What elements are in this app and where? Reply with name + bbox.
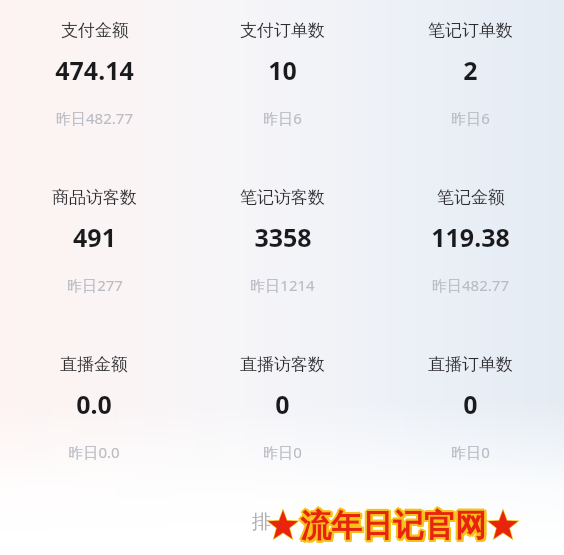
staticText: 笔记订单数 <box>428 20 513 41</box>
staticText: 直播订单数 <box>428 354 513 375</box>
staticText: 119.38 <box>431 220 510 254</box>
staticText: 昨日6 <box>451 108 490 128</box>
staticText: 流年日记官网 <box>302 506 488 545</box>
staticText: 10 <box>268 53 297 87</box>
staticText: 流年日记官网 <box>302 508 488 547</box>
staticText: 昨日482.77 <box>56 108 133 128</box>
staticText: 流年日记官网 <box>299 508 485 547</box>
staticText: 排 <box>252 510 271 534</box>
staticText: 流年日记官网 <box>299 505 485 544</box>
staticText: 昨日482.77 <box>432 275 509 295</box>
staticText: 昨日0.0 <box>68 442 120 462</box>
button[interactable]: 笔记订单数 <box>428 20 513 128</box>
staticText: 流年日记官网 <box>300 506 486 545</box>
staticText: 直播金额 <box>60 354 128 375</box>
button[interactable]: 直播访客数 <box>240 354 325 462</box>
staticText: 直播访客数 <box>240 354 325 375</box>
staticText: 流年日记官网 <box>302 505 488 544</box>
button[interactable]: 支付金额 <box>55 20 134 128</box>
staticText: 流年日记官网 <box>300 504 486 543</box>
button[interactable]: 支付订单数 <box>240 20 325 128</box>
staticText: 支付金额 <box>61 20 129 41</box>
staticText: 3358 <box>254 220 312 254</box>
staticText: 0 <box>275 387 290 421</box>
other: 流年日记官网 <box>266 506 520 545</box>
staticText: 0.0 <box>76 387 112 421</box>
button[interactable]: 笔记访客数 <box>240 187 325 295</box>
staticText: 商品访客数 <box>52 187 137 208</box>
staticText: 流年日记官网 <box>300 508 486 547</box>
button[interactable]: 商品访客数 <box>52 187 137 295</box>
staticText: 昨日6 <box>263 108 302 128</box>
staticText: 流年日记官网 <box>298 506 484 545</box>
staticText: 昨日1214 <box>250 275 315 295</box>
staticText: 笔记访客数 <box>240 187 325 208</box>
button[interactable]: 直播金额 <box>60 354 128 462</box>
button[interactable]: 笔记金额 <box>431 187 510 295</box>
staticText: 笔记金额 <box>437 187 505 208</box>
button[interactable]: 直播订单数 <box>428 354 513 462</box>
staticText: 2 <box>463 53 478 87</box>
staticText: 491 <box>73 220 116 254</box>
staticText: 0 <box>463 387 478 421</box>
staticText: 昨日277 <box>67 275 123 295</box>
staticText: 昨日0 <box>263 442 302 462</box>
staticText: 支付订单数 <box>240 20 325 41</box>
staticText: 474.14 <box>55 53 134 87</box>
staticText: 昨日0 <box>451 442 490 462</box>
